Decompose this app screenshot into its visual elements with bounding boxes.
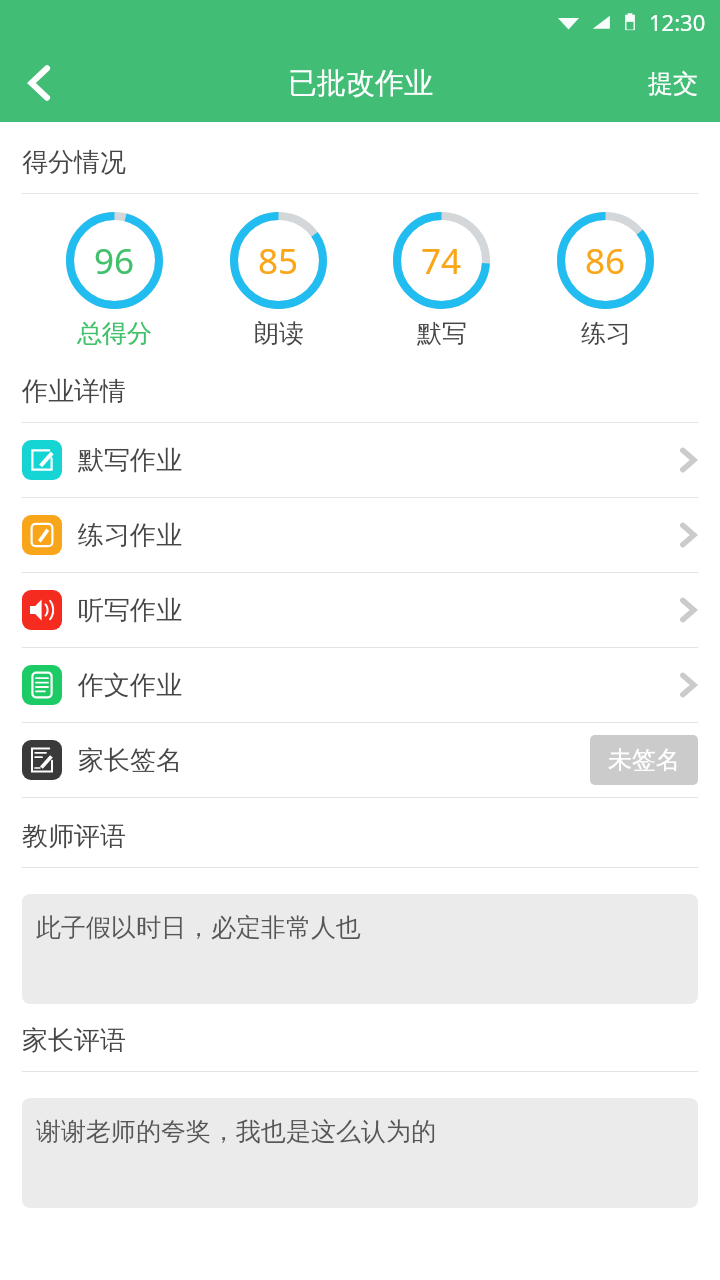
- button[interactable]: 提交: [626, 44, 720, 122]
- staticText: 12:30: [649, 7, 706, 37]
- button[interactable]: 谢谢老师的夸奖，我也是这么认为的: [22, 1098, 698, 1208]
- staticText: 85: [258, 237, 299, 285]
- button[interactable]: 听写作业: [0, 573, 720, 648]
- button[interactable]: 作文作业: [0, 648, 720, 723]
- staticText: 86: [585, 237, 626, 285]
- staticText: 未签名: [608, 745, 680, 775]
- staticText: 听写作业: [78, 594, 182, 627]
- staticText: 默写: [417, 318, 467, 349]
- staticText: 提交: [648, 68, 698, 99]
- staticText: 总得分: [77, 318, 152, 349]
- staticText: 家长签名: [78, 744, 182, 777]
- staticText: 得分情况: [22, 146, 126, 179]
- staticText: 作业详情: [22, 375, 126, 408]
- staticText: 此子假以时日，必定非常人也: [36, 912, 361, 943]
- staticText: 96: [94, 237, 135, 285]
- staticText: 朗读: [254, 318, 304, 349]
- staticText: 家长评语: [22, 1024, 126, 1057]
- button[interactable]: 默写作业: [0, 423, 720, 498]
- staticText: 默写作业: [78, 444, 182, 477]
- staticText: 练习: [581, 318, 631, 349]
- staticText: 教师评语: [22, 820, 126, 853]
- staticText: 谢谢老师的夸奖，我也是这么认为的: [36, 1116, 436, 1147]
- staticText: 已批改作业: [288, 65, 433, 102]
- staticText: 作文作业: [78, 669, 182, 702]
- staticText: 练习作业: [78, 519, 182, 552]
- button[interactable]: 未签名: [590, 735, 698, 785]
- button[interactable]: 此子假以时日，必定非常人也: [22, 894, 698, 1004]
- button[interactable]: 练习作业: [0, 498, 720, 573]
- button[interactable]: Back: [0, 44, 78, 122]
- staticText: 74: [421, 237, 462, 285]
